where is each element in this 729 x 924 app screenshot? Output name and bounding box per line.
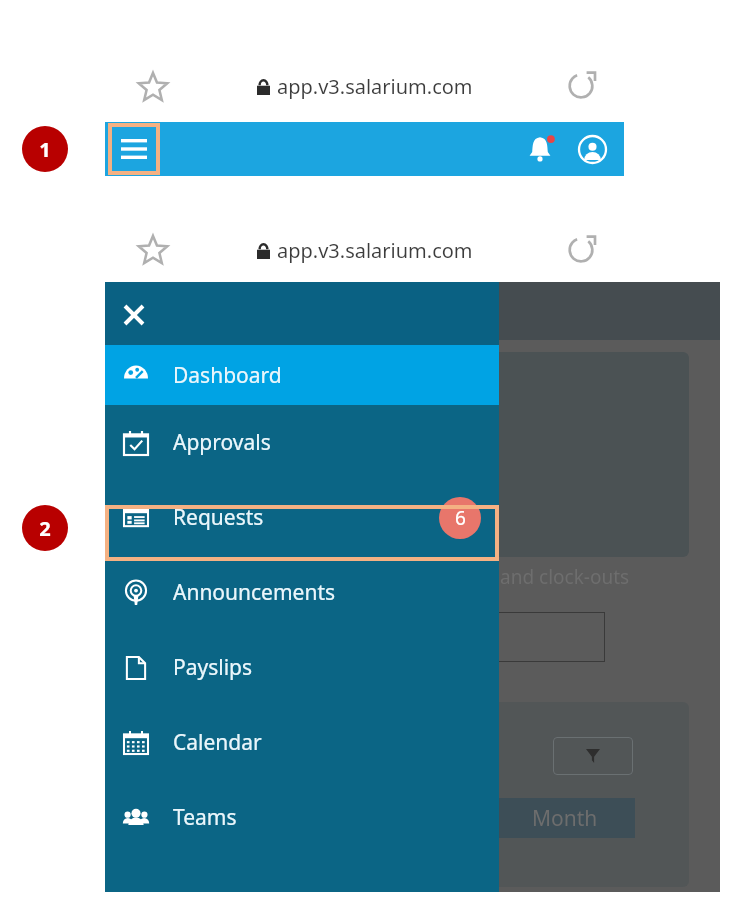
button[interactable]: Calendar: [105, 705, 499, 780]
button[interactable]: Close menu: [113, 294, 155, 336]
staticText: 6: [455, 505, 466, 531]
button[interactable]: Bookmark: [133, 230, 173, 270]
button[interactable]: Reload: [560, 65, 602, 107]
button[interactable]: Reload: [560, 229, 602, 271]
staticText: 1: [39, 136, 51, 163]
button[interactable]: Teams: [105, 780, 499, 855]
staticText: app.v3.salarium.com: [277, 237, 473, 264]
button[interactable]: Requests: [105, 480, 499, 555]
button[interactable]: Account: [574, 131, 610, 167]
staticText: and clock-outs: [500, 564, 630, 590]
button[interactable]: Notifications: [522, 131, 558, 167]
button[interactable]: Approvals: [105, 405, 499, 480]
button[interactable]: Announcements: [105, 555, 499, 630]
staticText: Announcements: [173, 578, 336, 607]
staticText: Calendar: [173, 728, 262, 757]
button[interactable]: Open navigation menu: [108, 123, 160, 175]
staticText: Dashboard: [173, 361, 282, 390]
staticText: Month: [532, 804, 598, 833]
staticText: app.v3.salarium.com: [277, 73, 473, 100]
staticText: 2: [39, 515, 51, 542]
button[interactable]: Payslips: [105, 630, 499, 705]
button[interactable]: Bookmark: [133, 67, 173, 107]
staticText: Requests: [173, 503, 264, 532]
button[interactable]: Dashboard: [105, 345, 499, 405]
staticText: Payslips: [173, 653, 253, 682]
staticText: Approvals: [173, 428, 271, 457]
staticText: Teams: [173, 803, 237, 832]
